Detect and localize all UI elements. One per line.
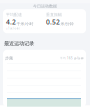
staticText: 步频 — [5, 56, 13, 61]
staticText: 平均配速 — [6, 12, 22, 17]
staticText: 平均 — [60, 57, 66, 60]
staticText: 垂直振幅 — [46, 12, 62, 17]
staticText: 最近运动记录 — [4, 40, 34, 47]
staticText: 0.52 — [46, 17, 60, 26]
staticText: 今日运动数据 — [33, 4, 57, 9]
staticText: 千米/小时 — [16, 21, 33, 26]
staticText: 米/分钟 — [60, 21, 73, 26]
staticText: 165 步/分钟 — [66, 56, 84, 60]
staticText: 4.2 — [6, 17, 16, 26]
staticText: +1米/小时 — [6, 27, 20, 30]
